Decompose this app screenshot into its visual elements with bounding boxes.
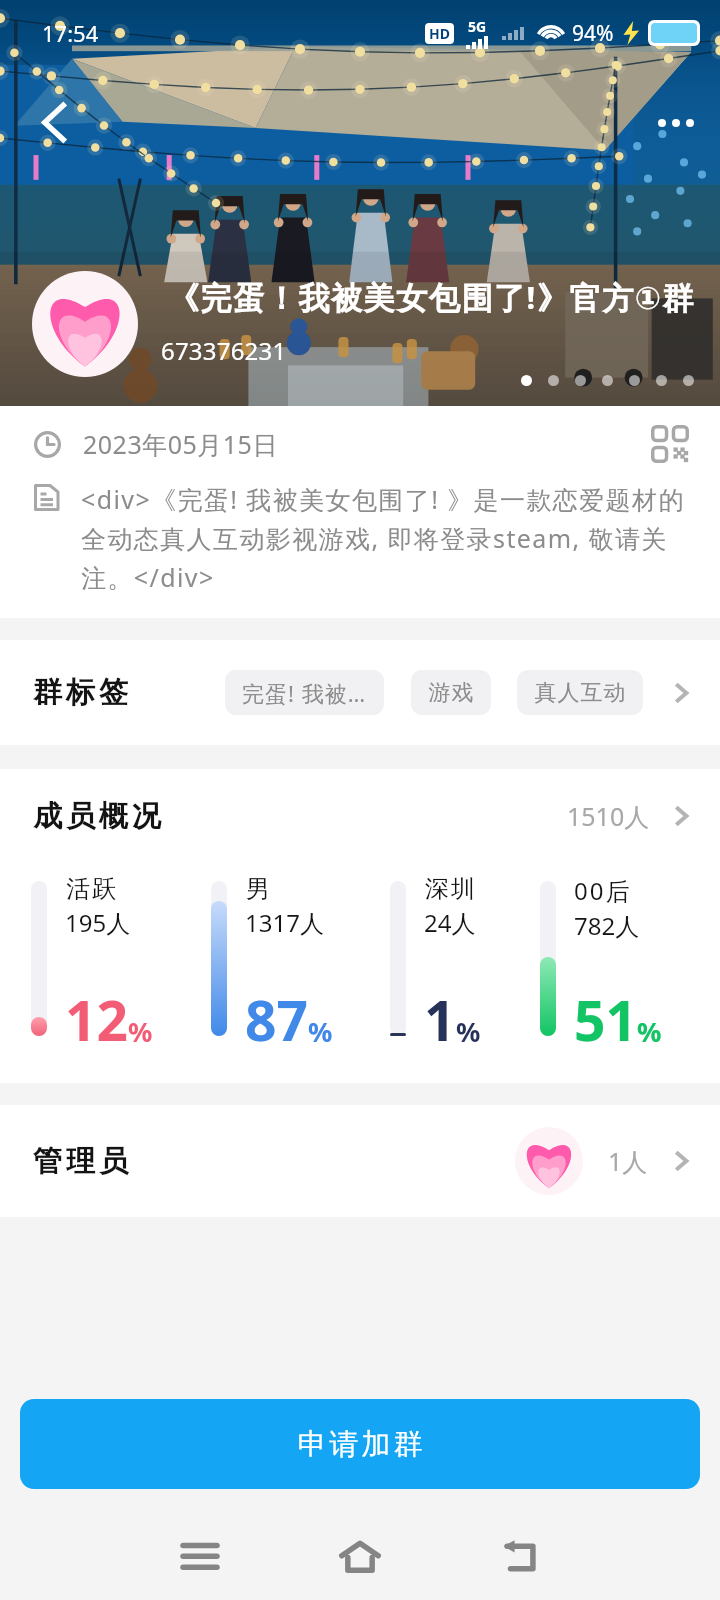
staticText: HD (429, 24, 450, 43)
staticText: 782人 (574, 909, 640, 942)
staticText: 24人 (424, 906, 476, 939)
button[interactable]: QR code (646, 420, 694, 468)
staticText: 2023年05月15日 (83, 427, 278, 461)
staticText: 94% (572, 19, 614, 48)
staticText: 成员概况 (31, 798, 163, 835)
staticText: 真人互动 (534, 679, 626, 707)
button[interactable]: Recent apps (160, 1517, 240, 1597)
staticText: 完蛋! 我被… (242, 678, 367, 708)
staticText: 1人 (608, 1144, 648, 1178)
staticText: 1317人 (245, 906, 324, 939)
staticText: 管理员 (31, 1143, 130, 1180)
staticText: 12 (65, 982, 128, 1057)
staticText: 活跃 (65, 874, 117, 904)
button[interactable]: Back (24, 92, 84, 152)
staticText: 1510人 (567, 799, 650, 833)
staticText: % (308, 1013, 333, 1050)
button[interactable]: 成员概况 (31, 788, 698, 844)
staticText: 51 (574, 982, 637, 1057)
staticText: % (637, 1013, 662, 1050)
staticText: 申请加群 (296, 1426, 424, 1463)
staticText: % (128, 1013, 153, 1050)
button[interactable]: Home (320, 1517, 400, 1597)
button[interactable]: 游戏 (411, 670, 491, 715)
staticText: 87 (245, 982, 308, 1057)
button[interactable]: Back (480, 1517, 560, 1597)
staticText: 5G (468, 17, 487, 36)
staticText: 男 (245, 874, 271, 904)
button[interactable]: 群标签 (0, 640, 720, 745)
staticText: 《完蛋！我被美女包围了!》官方①群 (168, 276, 696, 318)
staticText: 00后 (574, 874, 632, 907)
staticText: 17:54 (42, 18, 99, 48)
staticText: 195人 (65, 906, 131, 939)
staticText: 深圳 (424, 874, 476, 904)
button[interactable]: 真人互动 (517, 670, 643, 715)
staticText: 1 (424, 982, 456, 1057)
staticText: 游戏 (428, 679, 474, 707)
button[interactable]: 申请加群 (20, 1399, 700, 1489)
staticText: 673376231 (161, 334, 287, 367)
button[interactable]: 完蛋! 我被… (225, 670, 384, 715)
button[interactable]: More options (645, 100, 707, 146)
staticText: % (456, 1013, 481, 1050)
staticText: 群标签 (31, 674, 130, 711)
staticText: <div>《完蛋! 我被美女包围了! 》是一款恋爱题材的全动态真人互动影视游戏,… (81, 482, 696, 594)
button[interactable]: 管理员 (0, 1105, 720, 1217)
